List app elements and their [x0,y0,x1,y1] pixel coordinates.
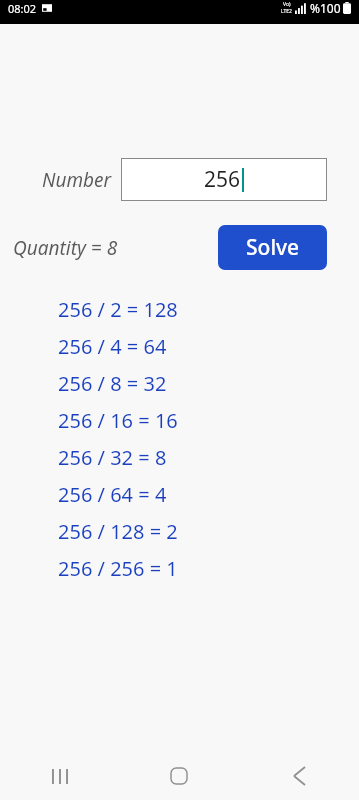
staticText: LTE2 [281,8,292,15]
staticText: 256 / 32 = 8 [58,444,167,471]
staticText: 256 / 4 = 64 [58,333,167,360]
staticText: Number [42,167,112,193]
button[interactable]: 256 / 128 = 2 [0,513,359,550]
staticText: 256 / 16 = 16 [58,407,178,434]
staticText: 256 / 64 = 4 [58,481,167,508]
button[interactable]: 256 / 64 = 4 [0,476,359,513]
staticText: %100 [310,0,341,16]
staticText: 256 [204,165,241,194]
button[interactable]: 256 / 32 = 8 [0,439,359,476]
button[interactable]: 256 / 16 = 16 [0,402,359,439]
button[interactable]: 256 [121,158,327,201]
button[interactable]: Solve [218,225,327,270]
button[interactable]: 256 / 4 = 64 [0,328,359,365]
button[interactable]: Recent apps [0,752,119,800]
staticText: 256 / 8 = 32 [58,370,167,397]
button[interactable]: Back [239,752,359,800]
staticText: 256 / 256 = 1 [58,555,178,582]
button[interactable]: 256 / 8 = 32 [0,365,359,402]
staticText: Vo) [283,1,291,8]
staticText: 08:02 [8,1,37,16]
staticText: 256 / 128 = 2 [58,518,178,545]
staticText: Quantity = 8 [13,235,118,261]
button[interactable]: Home [119,752,239,800]
button[interactable]: 256 / 256 = 1 [0,550,359,587]
button[interactable]: 256 / 2 = 128 [0,291,359,328]
staticText: 256 / 2 = 128 [58,296,178,323]
staticText: Solve [246,233,300,262]
